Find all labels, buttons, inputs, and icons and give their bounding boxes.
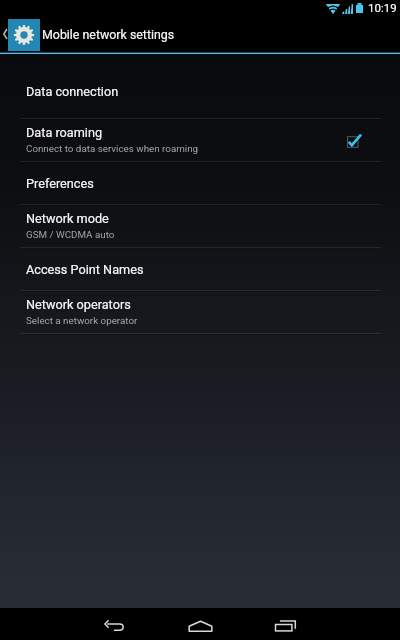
button[interactable]: Preferences [0,163,400,206]
button[interactable]: Network mode [0,206,400,249]
button[interactable]: Access Point Names [0,249,400,292]
button[interactable]: Data roaming [0,120,400,163]
button[interactable]: Recent apps [242,608,328,640]
button[interactable]: Network operators [0,292,400,335]
button[interactable]: Home [158,608,242,640]
button[interactable]: Data connection [0,64,400,120]
staticText: Select a network operator [26,315,138,326]
staticText: Preferences [26,176,94,191]
staticText: Network mode [26,211,109,226]
staticText: GSM / WCDMA auto [26,229,115,240]
staticText: Access Point Names [26,262,144,277]
staticText: Data connection [26,84,119,99]
staticText: Mobile network settings [42,27,175,42]
staticText: 10:19 [368,1,397,14]
button[interactable]: Navigate up [0,17,41,51]
button[interactable]: Back [72,608,158,640]
staticText: Network operators [26,297,131,312]
staticText: Data roaming [26,125,103,140]
staticText: Connect to data services when roaming [26,143,199,154]
